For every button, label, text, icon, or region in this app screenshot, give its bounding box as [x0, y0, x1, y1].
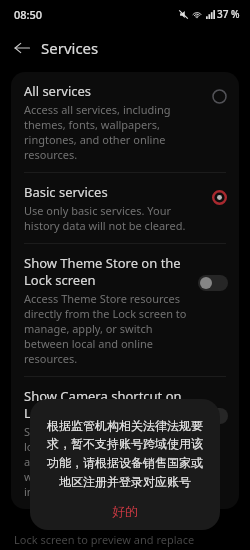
button[interactable]: All services [11, 72, 239, 172]
staticText: 37 % [217, 7, 240, 21]
button[interactable]: Option [210, 87, 228, 105]
staticText: Access all services, including themes, f… [24, 102, 200, 162]
staticText: Lock screen to preview and replace [14, 532, 195, 547]
staticText: Basic services [24, 183, 108, 201]
button[interactable]: Toggle off [198, 408, 228, 424]
staticText: Services [41, 38, 99, 58]
staticText: Show Theme Store on the Lock screen [24, 254, 188, 289]
button[interactable]: Toggle off [198, 275, 228, 291]
button[interactable]: Show Camera shortcut on Lock screen [11, 377, 239, 509]
staticText: 08:50 [14, 7, 43, 22]
staticText: 好的 [112, 503, 138, 519]
staticText: Use only basic services. Your history da… [24, 203, 200, 233]
staticText: Access Theme Store resources directly fr… [24, 291, 188, 366]
staticText: All services [24, 82, 92, 100]
button[interactable]: Show Theme Store on the Lock screen [11, 244, 239, 376]
staticText: Show Camera shortcut on Lock screen [24, 387, 188, 422]
button[interactable]: Selected option [210, 188, 228, 206]
button[interactable]: Back [5, 31, 39, 65]
button[interactable]: Basic services [11, 173, 239, 243]
button[interactable]: 好的 [30, 492, 220, 530]
staticText: Show an icon for Camera in the lower-rig… [24, 424, 188, 499]
staticText: 根据监管机构相关法律法规要求，暂不支持账号跨域使用该功能，请根据设备销售国家或地… [44, 418, 206, 490]
